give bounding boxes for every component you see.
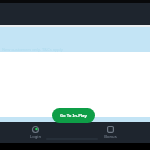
- staticText: Bonus: [104, 134, 117, 140]
- staticText: New customers only. T&Cs apply: [2, 47, 63, 52]
- button[interactable]: Login: [20, 123, 50, 143]
- button[interactable]: Bonus: [95, 123, 125, 143]
- staticText: Go To In-Play: [60, 113, 88, 119]
- staticText: Login: [30, 134, 41, 140]
- button[interactable]: Go To In-Play: [52, 108, 95, 123]
